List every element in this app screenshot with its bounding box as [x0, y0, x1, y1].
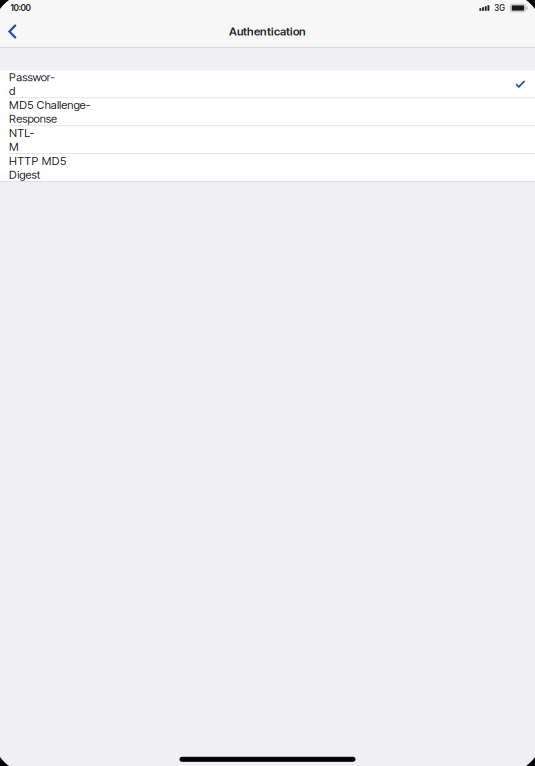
staticText: 3G [494, 3, 505, 13]
button[interactable]: HTTP MD5 Digest [0, 154, 535, 181]
staticText: Password [9, 70, 55, 98]
staticText: MD5 Challenge-Response [9, 98, 91, 125]
button[interactable]: Back [0, 16, 29, 47]
staticText: HTTP MD5 Digest [9, 154, 66, 181]
button[interactable]: NTLM [0, 126, 535, 154]
staticText: NTLM [9, 126, 34, 153]
button[interactable]: MD5 Challenge-Response [0, 98, 535, 126]
staticText: 10:00 [10, 3, 30, 13]
button[interactable]: Password [0, 70, 535, 98]
staticText: Authentication [229, 25, 306, 38]
